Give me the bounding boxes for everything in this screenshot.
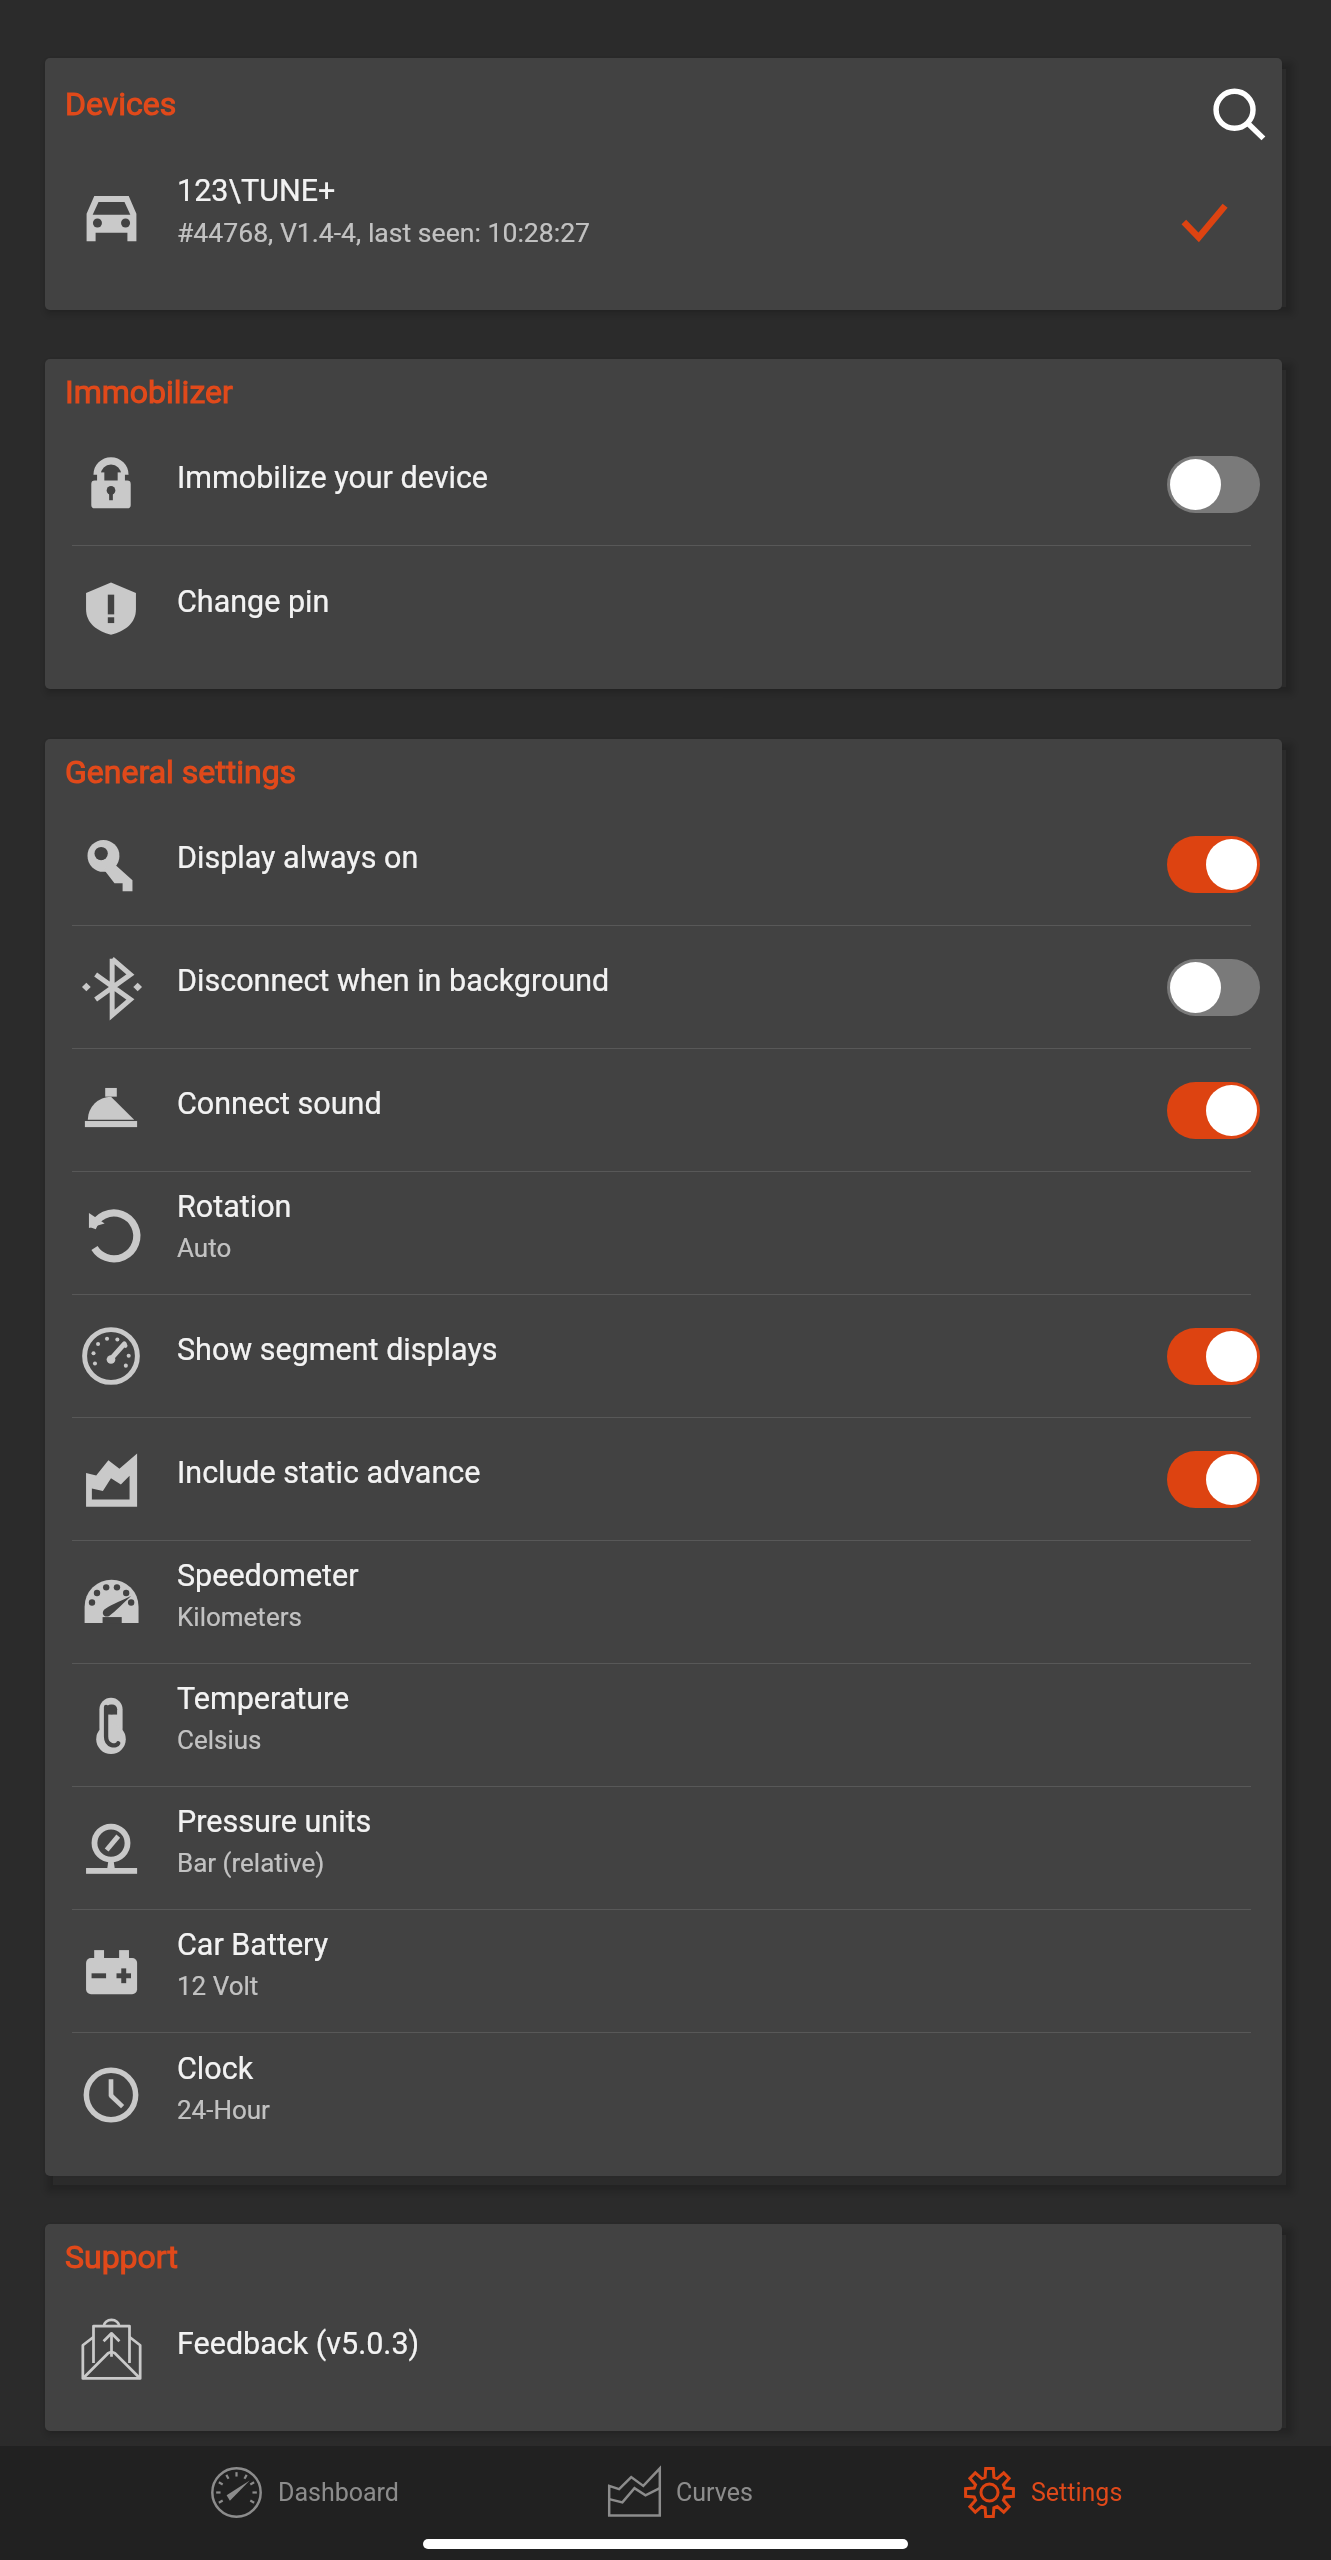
staticText: Include static advance	[177, 1455, 481, 1491]
staticText: Feedback (v5.0.3)	[177, 2326, 420, 2362]
button[interactable]: Connect sound	[45, 1049, 1282, 1171]
staticText: Show segment displays	[177, 1332, 498, 1368]
staticText: Temperature	[177, 1681, 350, 1717]
staticText: Settings	[1031, 2478, 1123, 2507]
button[interactable]: Switch on	[1167, 1451, 1260, 1508]
button[interactable]: Car Battery	[45, 1910, 1282, 2032]
button[interactable]: 123\TUNE+	[45, 135, 1282, 310]
button[interactable]: Switch off	[1167, 959, 1260, 1016]
button[interactable]: Rotation	[45, 1172, 1282, 1294]
staticText: Clock	[177, 2051, 254, 2087]
button[interactable]: Display always on	[45, 803, 1282, 925]
staticText: Change pin	[177, 584, 330, 620]
staticText: General settings	[65, 753, 297, 791]
staticText: 12 Volt	[177, 1971, 259, 2001]
staticText: Connect sound	[177, 1086, 382, 1122]
button[interactable]: Pressure units	[45, 1787, 1282, 1909]
button[interactable]: Temperature	[45, 1664, 1282, 1786]
staticText: Support	[65, 2238, 178, 2276]
button[interactable]: Clock	[45, 2033, 1282, 2176]
button[interactable]: Change pin	[45, 546, 1282, 689]
button[interactable]: Feedback (v5.0.3)	[45, 2288, 1282, 2431]
button[interactable]: Switch on	[1167, 836, 1260, 893]
staticText: Rotation	[177, 1189, 292, 1225]
staticText: Display always on	[177, 840, 419, 876]
staticText: Immobilize your device	[177, 460, 489, 496]
staticText: Speedometer	[177, 1558, 359, 1594]
button[interactable]: Speedometer	[45, 1541, 1282, 1663]
staticText: 24-Hour	[177, 2095, 270, 2125]
staticText: Immobilizer	[65, 373, 233, 411]
staticText: Dashboard	[278, 2478, 399, 2507]
staticText: Devices	[65, 85, 177, 123]
staticText: Curves	[676, 2478, 753, 2507]
button[interactable]: Curves	[607, 2446, 753, 2538]
button[interactable]: Selected	[1172, 191, 1236, 255]
button[interactable]: Disconnect when in background	[45, 926, 1282, 1048]
staticText: Pressure units	[177, 1804, 372, 1840]
button[interactable]: Switch off	[1167, 456, 1260, 513]
staticText: Car Battery	[177, 1927, 329, 1963]
button[interactable]: Settings	[962, 2446, 1123, 2538]
button[interactable]: Search	[1192, 76, 1282, 153]
staticText: #44768, V1.4-4, last seen: 10:28:27	[177, 217, 591, 248]
button[interactable]: Include static advance	[45, 1418, 1282, 1540]
staticText: Disconnect when in background	[177, 963, 610, 999]
staticText: Kilometers	[177, 1602, 302, 1632]
button[interactable]: Immobilize your device	[45, 423, 1282, 545]
button[interactable]: Show segment displays	[45, 1295, 1282, 1417]
button[interactable]: Switch on	[1167, 1328, 1260, 1385]
button[interactable]: Switch on	[1167, 1082, 1260, 1139]
button[interactable]: Dashboard	[209, 2446, 399, 2538]
staticText: Celsius	[177, 1725, 262, 1755]
staticText: Bar (relative)	[177, 1848, 325, 1878]
staticText: Auto	[177, 1233, 232, 1263]
staticText: 123\TUNE+	[177, 173, 336, 209]
